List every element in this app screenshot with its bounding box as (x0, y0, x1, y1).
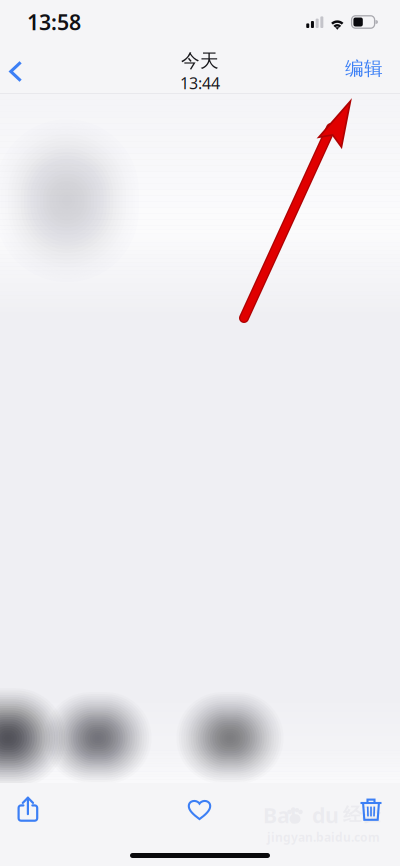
staticText: 13:58 (27, 8, 81, 36)
button[interactable]: Favorite (171, 784, 227, 834)
staticText: Bai (263, 801, 296, 829)
button[interactable]: Share (0, 784, 56, 834)
button[interactable]: Delete (343, 784, 399, 834)
staticText: 编辑 (345, 57, 383, 80)
staticText: 经验 (343, 803, 381, 826)
staticText: jingyan.baidu.com (267, 829, 380, 845)
staticText: du (312, 801, 339, 829)
staticText: 今天 (181, 49, 219, 72)
button[interactable]: 编辑 (325, 45, 400, 92)
button[interactable]: Back (0, 45, 39, 92)
staticText: 13:44 (180, 72, 220, 93)
